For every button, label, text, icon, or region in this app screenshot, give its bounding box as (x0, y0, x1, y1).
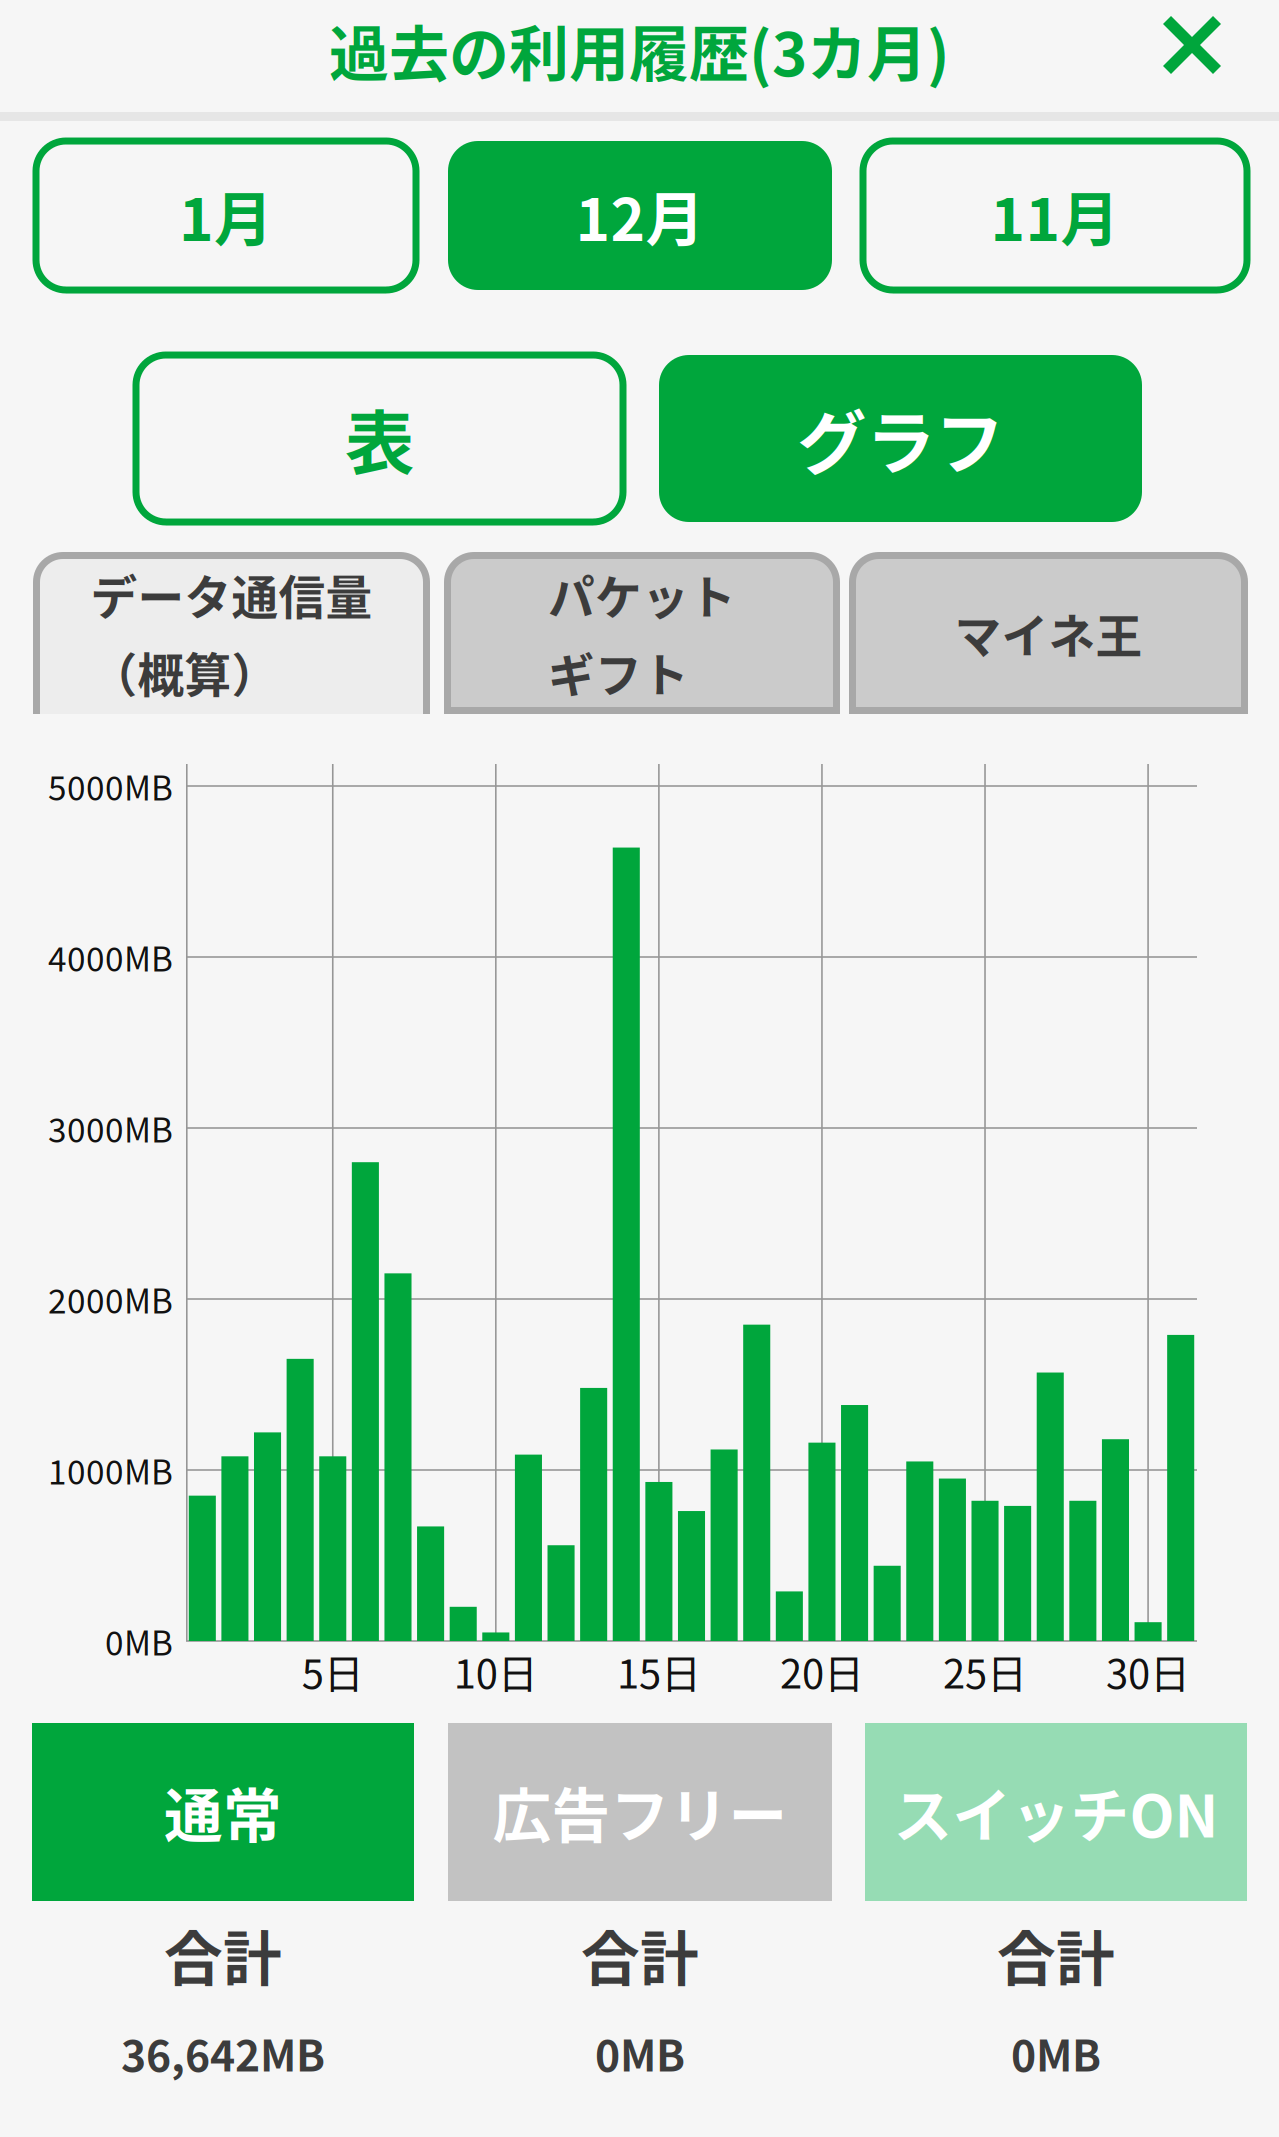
staticText: 合計 (164, 1912, 282, 1997)
button[interactable]: グラフ (659, 355, 1142, 522)
staticText: 25日 (943, 1642, 1027, 1700)
staticText: 5日 (302, 1642, 364, 1700)
staticText: 過去の利用履歴(3カ月) (329, 7, 950, 93)
staticText: 0MB (595, 2022, 685, 2084)
staticText: スイッチON (893, 1769, 1218, 1854)
button[interactable]: パケット ギフト (444, 552, 840, 714)
staticText: 5000MB (48, 762, 173, 810)
staticText: 通常 (164, 1769, 282, 1854)
staticText: パケット ギフト (548, 560, 736, 705)
button[interactable]: 11月 (863, 141, 1247, 290)
staticText: 1月 (179, 173, 273, 258)
staticText: 15日 (617, 1642, 701, 1700)
button[interactable]: 表 (136, 355, 623, 522)
staticText: 広告フリー (492, 1769, 787, 1854)
staticText: 合計 (581, 1912, 699, 1997)
staticText: 36,642MB (121, 2022, 325, 2084)
staticText: 2000MB (48, 1275, 173, 1323)
staticText: 0MB (1011, 2022, 1101, 2084)
staticText: 11月 (990, 173, 1119, 258)
staticText: グラフ (797, 388, 1004, 489)
staticText: 表 (345, 388, 414, 489)
staticText: 10日 (454, 1642, 538, 1700)
staticText: 12月 (575, 173, 704, 258)
staticText: データ通信量 （概算） (90, 560, 372, 705)
staticText: 3000MB (48, 1104, 173, 1152)
staticText: 30日 (1106, 1642, 1190, 1700)
button[interactable]: 閉じる (1136, 0, 1248, 101)
staticText: 合計 (997, 1912, 1115, 1997)
staticText: 1000MB (48, 1446, 173, 1494)
button[interactable]: 1月 (36, 141, 416, 290)
staticText: 20日 (780, 1642, 864, 1700)
staticText: マイネ王 (954, 599, 1142, 667)
button[interactable]: マイネ王 (849, 552, 1248, 714)
staticText: 4000MB (48, 933, 173, 981)
button[interactable]: 12月 (448, 141, 832, 290)
button[interactable]: データ通信量 （概算） (33, 552, 430, 714)
staticText: 0MB (105, 1617, 173, 1665)
